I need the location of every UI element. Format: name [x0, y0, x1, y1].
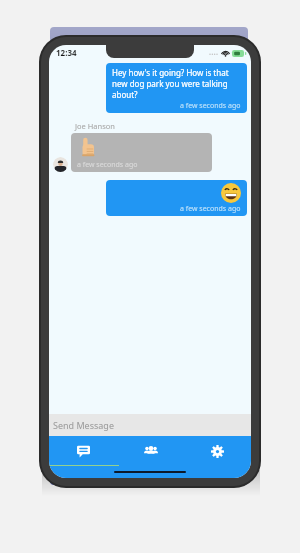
button[interactable]: Send Message — [49, 414, 251, 436]
staticText: a few seconds ago — [77, 160, 138, 170]
staticText: a few seconds ago — [180, 101, 241, 111]
staticText: Joe Hanson — [75, 121, 115, 131]
staticText: Hey how's it going? How is that new dog … — [112, 67, 241, 100]
button[interactable]: People — [117, 436, 184, 466]
button[interactable]: Hey how's it going? How is that new dog … — [106, 63, 247, 113]
button[interactable]: a few seconds ago — [106, 180, 247, 216]
button[interactable]: a few seconds ago — [71, 133, 212, 172]
button[interactable]: Chats — [49, 436, 117, 466]
staticText: 12:34 — [56, 47, 77, 58]
button[interactable]: Settings — [184, 436, 251, 466]
staticText: a few seconds ago — [180, 204, 241, 214]
staticText: Send Message — [53, 419, 114, 431]
